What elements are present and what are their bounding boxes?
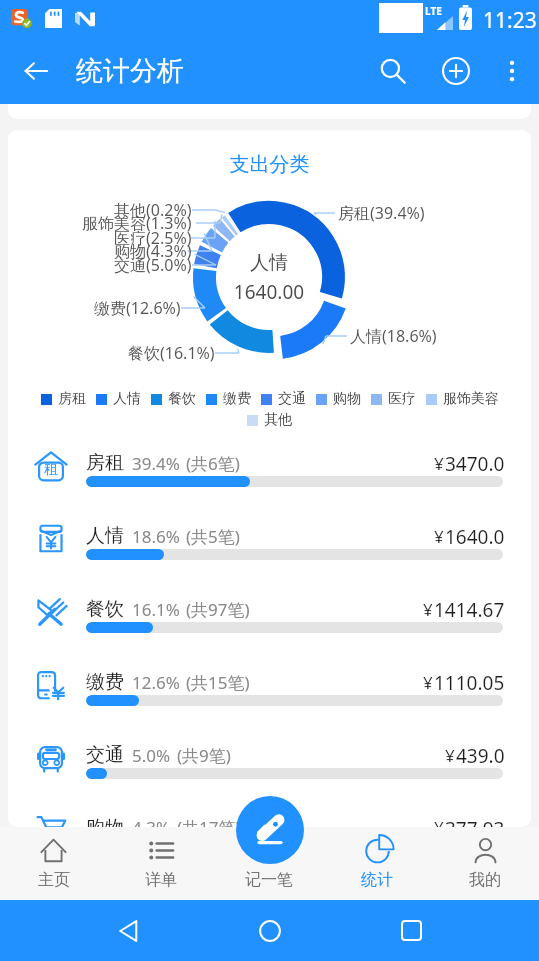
staticText: 人情: [113, 390, 141, 408]
button[interactable]: 人情: [8, 514, 531, 587]
staticText: 其他(0.2%): [114, 199, 192, 221]
staticText: 我的: [469, 870, 501, 890]
staticText: 交通: [86, 743, 124, 767]
staticText: ¥: [423, 671, 433, 694]
button[interactable]: 主页: [0, 827, 107, 900]
staticText: 人情: [86, 524, 124, 548]
staticText: ¥: [423, 598, 433, 621]
staticText: 缴费: [223, 390, 251, 408]
button[interactable]: 租: [8, 441, 531, 514]
staticText: (共9笔): [177, 744, 231, 767]
staticText: 39.4%: [132, 452, 180, 475]
button[interactable]: 详单: [107, 827, 215, 900]
staticText: 房租: [58, 390, 86, 408]
staticText: 377.93: [445, 816, 505, 827]
staticText: 18.6%: [132, 525, 180, 548]
staticText: 5.0%: [132, 744, 171, 767]
staticText: 购物: [86, 816, 124, 827]
staticText: 人情(18.6%): [350, 325, 437, 347]
staticText: 439.0: [456, 743, 505, 767]
button[interactable]: 记一笔: [236, 796, 304, 864]
button[interactable]: 统计: [323, 827, 431, 900]
staticText: 12.6%: [132, 671, 180, 694]
staticText: 租: [44, 461, 58, 479]
staticText: 购物(4.3%): [114, 240, 192, 262]
button[interactable]: 返回: [14, 49, 58, 93]
staticText: 交通: [278, 390, 306, 408]
staticText: 4.3%: [132, 816, 171, 827]
staticText: (共5笔): [186, 525, 240, 548]
staticText: 服饰美容: [443, 390, 499, 408]
staticText: 缴费(12.6%): [94, 297, 181, 319]
staticText: (共6笔): [186, 452, 240, 475]
button[interactable]: 交通: [8, 733, 531, 806]
staticText: 主页: [38, 870, 70, 890]
staticText: 购物: [333, 390, 361, 408]
staticText: 房租: [86, 451, 124, 475]
staticText: 支出分类: [8, 152, 531, 177]
button[interactable]: 更多: [490, 49, 534, 93]
staticText: (共97笔): [186, 598, 250, 621]
staticText: ¥: [434, 816, 444, 827]
staticText: 餐饮(16.1%): [128, 342, 215, 364]
staticText: 医疗: [388, 390, 416, 408]
button[interactable]: 搜索: [369, 47, 417, 95]
staticText: 餐饮: [168, 390, 196, 408]
button[interactable]: 我的: [431, 827, 539, 900]
button[interactable]: 购物: [8, 806, 531, 827]
staticText: 交通(5.0%): [114, 254, 192, 276]
staticText: 服饰美容(1.3%): [82, 212, 192, 234]
button[interactable]: 记一笔: [215, 827, 323, 900]
staticText: ¥: [434, 525, 444, 548]
staticText: 记一笔: [245, 870, 293, 890]
staticText: 1640.00: [219, 279, 319, 305]
staticText: LTE: [425, 4, 442, 18]
staticText: 11:23: [483, 6, 537, 35]
staticText: ¥: [445, 744, 455, 767]
staticText: 1640.0: [445, 524, 505, 548]
staticText: 其他: [264, 411, 292, 429]
staticText: 3470.0: [445, 451, 505, 475]
staticText: (共15笔): [186, 671, 250, 694]
staticText: 详单: [145, 870, 177, 890]
staticText: ¥: [434, 452, 444, 475]
staticText: 餐饮: [86, 597, 124, 621]
staticText: (共17笔): [177, 816, 241, 827]
staticText: 16.1%: [132, 598, 180, 621]
staticText: 1110.05: [434, 670, 505, 694]
button[interactable]: 缴费: [8, 660, 531, 733]
button[interactable]: 餐饮: [8, 587, 531, 660]
button[interactable]: 添加: [432, 47, 480, 95]
staticText: 缴费: [86, 670, 124, 694]
staticText: 统计: [361, 870, 393, 890]
staticText: 医疗(2.5%): [114, 227, 192, 249]
staticText: 房租(39.4%): [338, 202, 425, 224]
staticText: 人情: [229, 251, 309, 275]
staticText: 统计分析: [76, 54, 184, 88]
staticText: 1414.67: [434, 597, 505, 621]
